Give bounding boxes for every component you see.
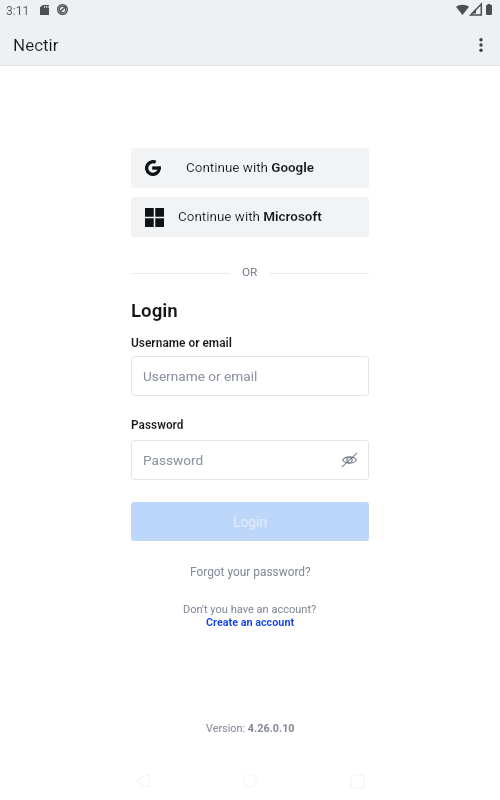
staticText: Password — [131, 418, 184, 432]
button[interactable]: Login — [131, 502, 369, 541]
staticText: Version: 4.26.0.10 — [206, 722, 295, 735]
staticText: 3:11 — [6, 4, 30, 18]
button[interactable]: Create an account — [131, 616, 369, 629]
staticText: Forgot your password? — [190, 565, 311, 579]
button[interactable]: Username or email — [131, 356, 369, 396]
staticText: Username or email — [143, 368, 258, 384]
button[interactable]: Continue with Microsoft — [131, 197, 369, 237]
staticText: Continue with Google — [186, 160, 315, 176]
staticText: Login — [131, 300, 178, 322]
button[interactable]: Show password — [331, 441, 367, 479]
staticText: Password — [143, 452, 204, 468]
staticText: Login — [233, 514, 268, 530]
button[interactable]: Password — [131, 440, 369, 480]
staticText: OR — [242, 265, 258, 279]
button[interactable]: Continue with Google — [131, 148, 369, 188]
staticText: Nectir — [13, 35, 59, 55]
staticText: Username or email — [131, 336, 232, 350]
staticText: Continue with Microsoft — [178, 209, 322, 225]
button[interactable]: Forgot your password? — [131, 565, 369, 579]
staticText: Don't you have an account? — [183, 603, 317, 616]
staticText: Create an account — [206, 616, 295, 629]
button[interactable]: More options — [466, 30, 496, 60]
